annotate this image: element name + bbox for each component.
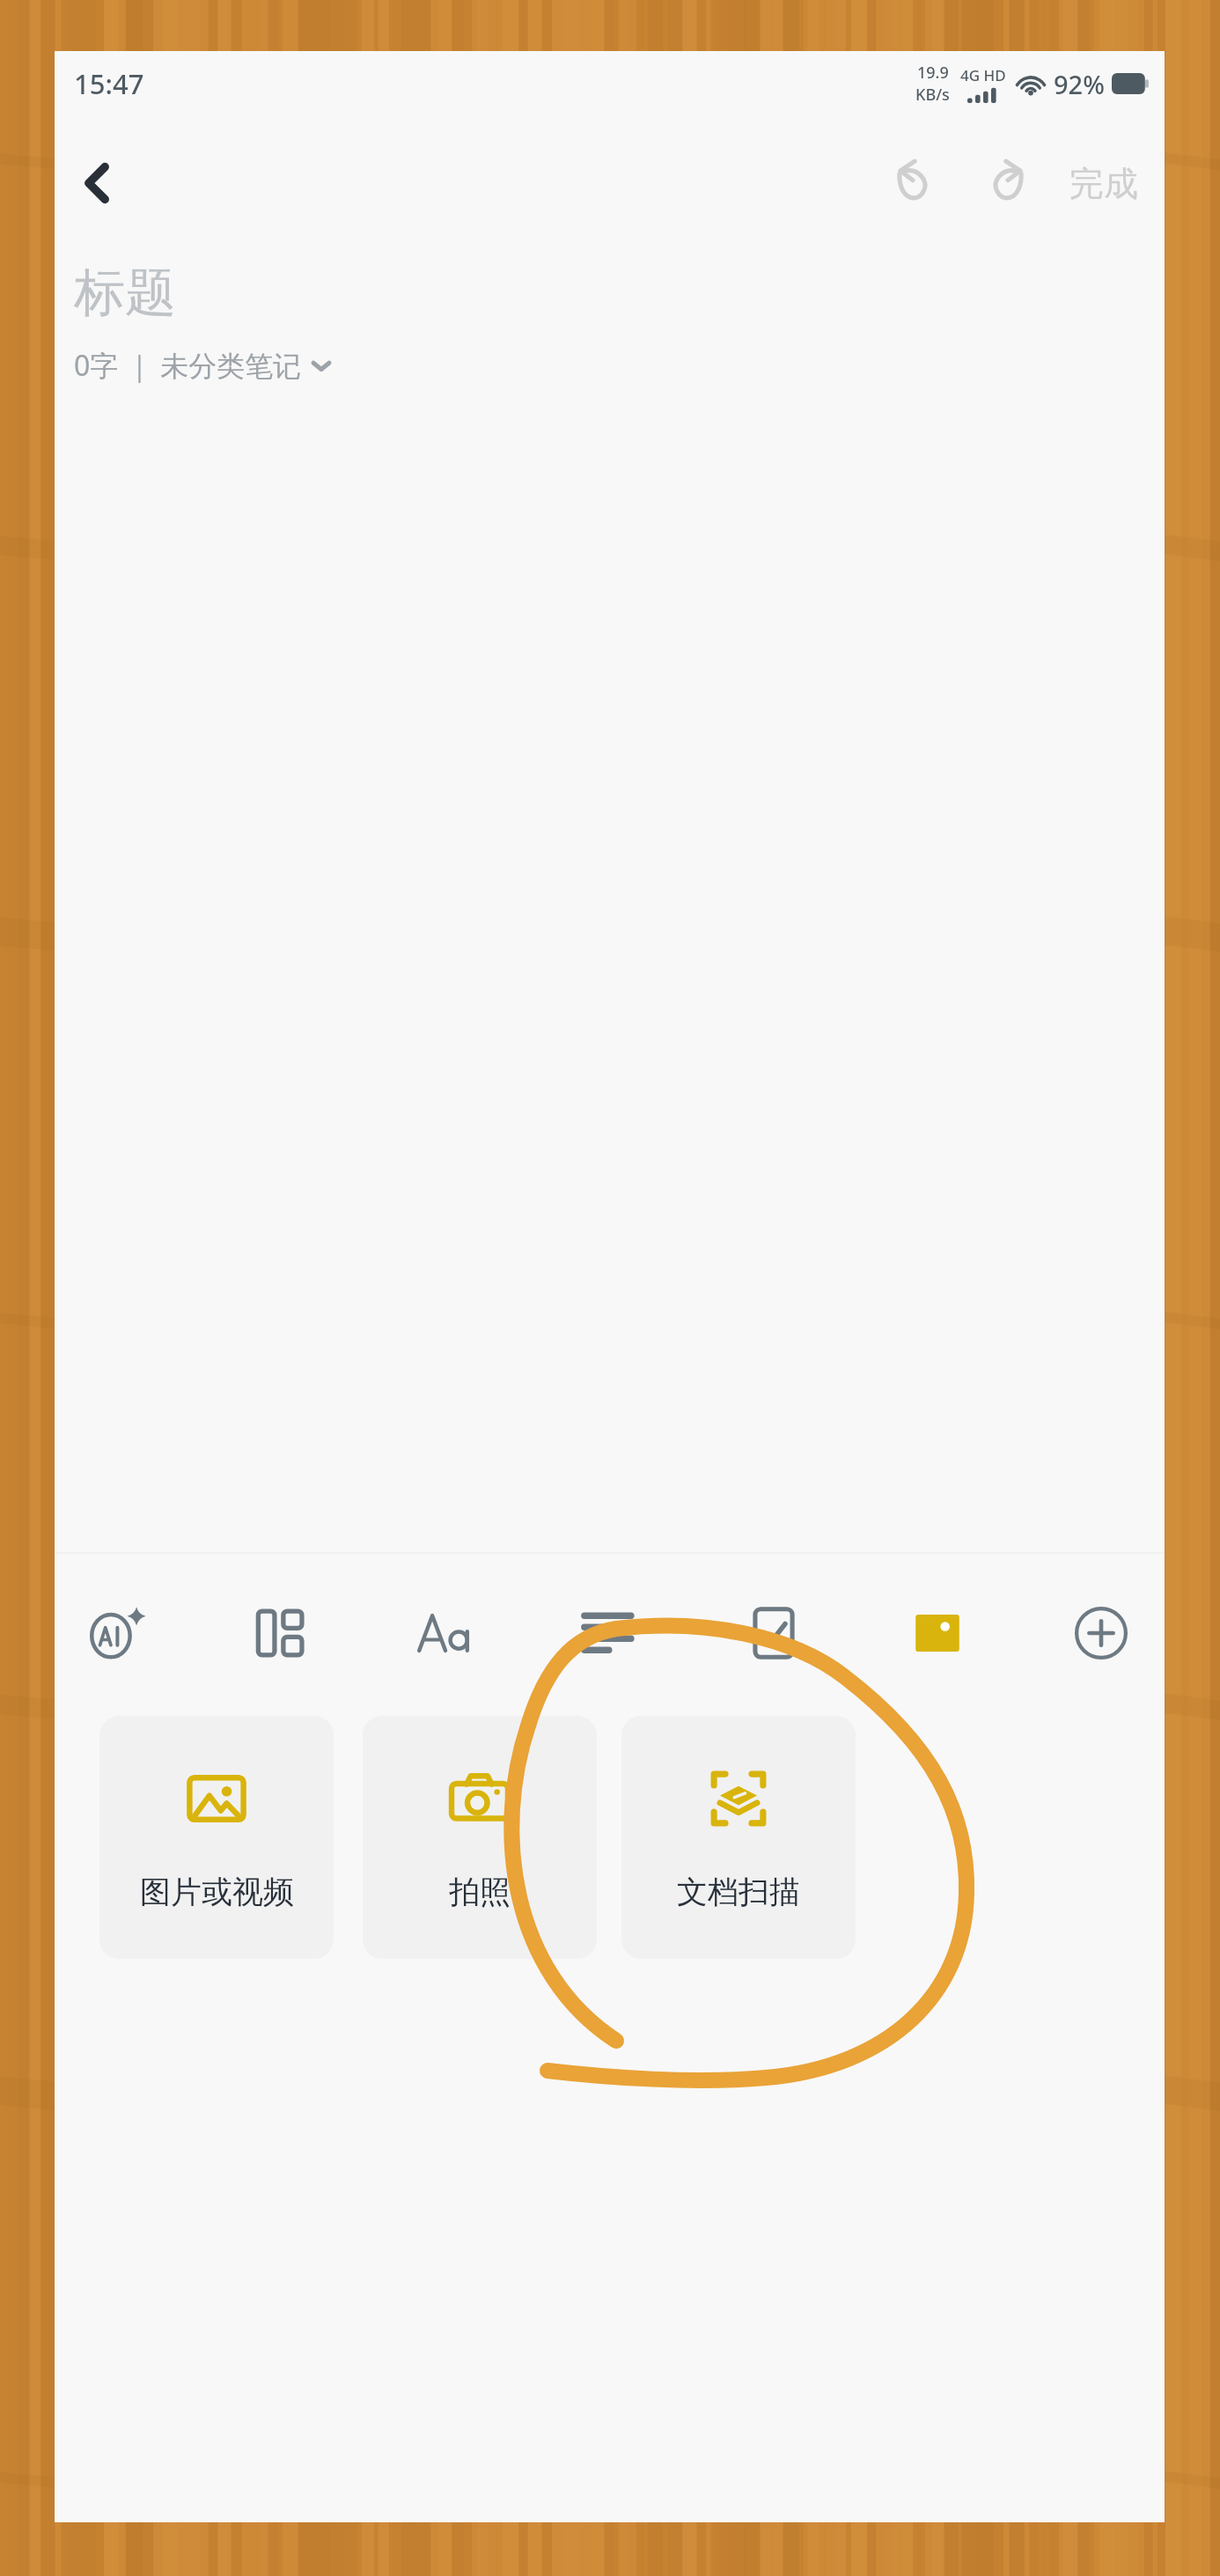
button[interactable]: 完成	[1057, 143, 1150, 224]
staticText: 完成	[1069, 162, 1138, 205]
staticText: 拍照	[449, 1873, 511, 1911]
staticText: 标题	[74, 261, 176, 325]
staticText: KB/s	[915, 84, 950, 106]
button[interactable]: Layout	[238, 1589, 326, 1677]
button[interactable]: AI assistant	[74, 1589, 162, 1677]
button[interactable]: Checklist	[730, 1589, 818, 1677]
staticText: 图片或视频	[140, 1873, 294, 1911]
button[interactable]: 图片或视频	[99, 1716, 334, 1959]
staticText: 92%	[1054, 67, 1105, 101]
button[interactable]: More options	[1057, 1589, 1145, 1677]
button[interactable]: Text style	[401, 1589, 489, 1677]
button[interactable]: 拍照	[363, 1716, 597, 1959]
button[interactable]: Paragraph align	[566, 1589, 654, 1677]
button[interactable]: 0字 ｜ 未分类笔记	[74, 346, 334, 385]
staticText: 15:47	[74, 65, 144, 102]
button[interactable]: Insert image	[893, 1589, 981, 1677]
button[interactable]: Undo	[872, 143, 953, 224]
staticText: 0字 ｜ 未分类笔记	[74, 346, 302, 385]
staticText: 4G HD	[960, 65, 1006, 85]
button[interactable]: 文档扫描	[621, 1716, 856, 1959]
button[interactable]: Redo	[967, 143, 1048, 224]
staticText: 文档扫描	[677, 1873, 800, 1911]
staticText: 19.9	[917, 62, 949, 84]
button[interactable]: Back	[58, 144, 136, 222]
